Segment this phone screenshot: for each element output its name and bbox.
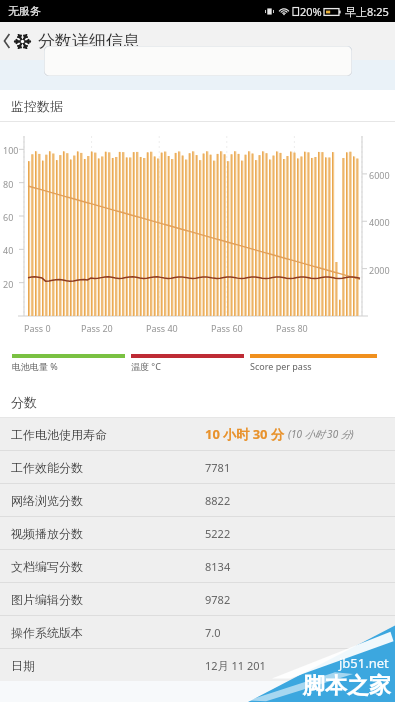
button[interactable]: 工作电池使用寿命 bbox=[0, 418, 395, 450]
staticText: Pass 0 bbox=[24, 322, 51, 334]
staticText: 温度 °C bbox=[131, 360, 161, 372]
staticText: 20% bbox=[300, 4, 322, 19]
staticText: 40 bbox=[3, 244, 14, 256]
button[interactable]: 图片编辑分数 bbox=[0, 583, 395, 615]
staticText: 视频播放分数 bbox=[11, 526, 83, 541]
staticText: Pass 20 bbox=[81, 322, 113, 334]
staticText: 8134 bbox=[205, 559, 231, 574]
staticText: 7781 bbox=[205, 460, 231, 475]
staticText: 工作效能分数 bbox=[11, 460, 83, 475]
staticText: 5222 bbox=[205, 526, 231, 541]
staticText: 12月 11 201 bbox=[205, 658, 266, 673]
staticText: 9782 bbox=[205, 592, 231, 607]
button[interactable]: 文档编写分数 bbox=[0, 550, 395, 582]
staticText: 4000 bbox=[369, 216, 390, 228]
staticText: Score per pass bbox=[250, 360, 312, 372]
staticText: 80 bbox=[3, 178, 14, 190]
staticText: jb51.net bbox=[339, 654, 389, 672]
staticText: 监控数据 bbox=[11, 98, 63, 114]
staticText: Pass 60 bbox=[211, 322, 243, 334]
staticText: 100 bbox=[3, 144, 19, 156]
button[interactable]: 视频播放分数 bbox=[0, 517, 395, 549]
staticText: 20 bbox=[3, 278, 14, 290]
staticText: 操作系统版本 bbox=[11, 625, 83, 640]
staticText: 日期 bbox=[11, 658, 35, 673]
staticText: 6000 bbox=[369, 169, 390, 181]
staticText: 2000 bbox=[369, 264, 390, 276]
staticText: 7.0 bbox=[205, 625, 221, 640]
staticText: 分数详细信息 bbox=[38, 31, 140, 52]
staticText: 工作电池使用寿命 bbox=[11, 427, 107, 442]
staticText: Pass 80 bbox=[276, 322, 308, 334]
button[interactable]: 操作系统版本 bbox=[0, 616, 395, 648]
button[interactable]: 网络浏览分数 bbox=[0, 484, 395, 516]
staticText: (10 小时 30 分) bbox=[288, 427, 354, 441]
staticText: 网络浏览分数 bbox=[11, 493, 83, 508]
staticText: Pass 40 bbox=[146, 322, 178, 334]
staticText: 60 bbox=[3, 211, 14, 223]
staticText: 电池电量 % bbox=[12, 360, 58, 372]
button[interactable]: Back bbox=[0, 22, 14, 60]
staticText: 分数 bbox=[11, 394, 37, 410]
staticText: 文档编写分数 bbox=[11, 559, 83, 574]
button[interactable]: 日期 bbox=[0, 649, 395, 681]
staticText: 8822 bbox=[205, 493, 231, 508]
button[interactable]: 工作效能分数 bbox=[0, 451, 395, 483]
staticText: 早上8:25 bbox=[345, 4, 389, 19]
staticText: 脚本之家 bbox=[303, 672, 391, 700]
staticText: 10 小时 30 分 bbox=[205, 425, 284, 443]
staticText: 图片编辑分数 bbox=[11, 592, 83, 607]
staticText: 无服务 bbox=[8, 4, 41, 18]
